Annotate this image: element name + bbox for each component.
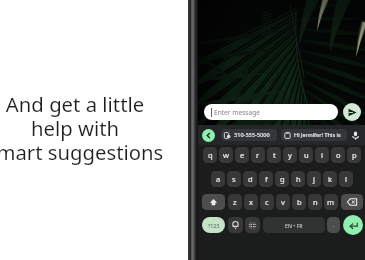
button[interactable]: . xyxy=(327,217,340,233)
staticText: a xyxy=(216,174,221,184)
staticText: q xyxy=(208,150,213,160)
button[interactable]: Backspace xyxy=(341,194,363,210)
staticText: u xyxy=(304,150,309,160)
staticText: v xyxy=(281,197,285,207)
button[interactable]: r xyxy=(251,147,265,163)
button[interactable]: y xyxy=(283,147,297,163)
button[interactable]: p xyxy=(347,147,361,163)
button[interactable]: i xyxy=(315,147,329,163)
staticText: z xyxy=(233,197,237,207)
button[interactable]: Change language xyxy=(245,217,260,233)
button[interactable]: b xyxy=(292,194,306,210)
staticText: w xyxy=(223,150,229,160)
staticText: m xyxy=(327,197,335,207)
staticText: x xyxy=(249,197,254,207)
staticText: h xyxy=(296,174,301,184)
staticText: EN • FR xyxy=(285,222,303,229)
staticText: Hi Jennifer! This is D xyxy=(294,131,344,139)
button[interactable]: ?123 xyxy=(202,217,225,233)
staticText: k xyxy=(328,174,333,184)
button[interactable]: Send xyxy=(343,103,361,121)
button[interactable]: Enter xyxy=(343,215,363,235)
button[interactable]: z xyxy=(228,194,242,210)
button[interactable]: v xyxy=(276,194,290,210)
staticText: g xyxy=(280,174,285,184)
button[interactable]: u xyxy=(299,147,313,163)
button[interactable]: n xyxy=(308,194,322,210)
button[interactable]: s xyxy=(227,171,241,187)
staticText: b xyxy=(297,197,302,207)
button[interactable]: Emoji xyxy=(228,217,243,233)
button[interactable]: d xyxy=(243,171,257,187)
button[interactable]: q xyxy=(203,147,217,163)
button[interactable]: h xyxy=(291,171,305,187)
staticText: p xyxy=(352,150,357,160)
staticText: d xyxy=(248,174,253,184)
button[interactable]: c xyxy=(260,194,274,210)
staticText: n xyxy=(313,197,318,207)
button[interactable]: g xyxy=(275,171,289,187)
staticText: ?123 xyxy=(208,222,220,229)
staticText: And get a little help with smart suggest… xyxy=(0,90,166,166)
button[interactable]: Hi Jennifer! This is D xyxy=(281,129,347,141)
staticText: Enter message xyxy=(214,108,260,117)
staticText: l xyxy=(345,174,347,184)
button[interactable]: a xyxy=(211,171,225,187)
staticText: . xyxy=(333,221,335,229)
button[interactable]: l xyxy=(339,171,353,187)
button[interactable]: Back xyxy=(202,129,215,142)
staticText: 310-555-5000 xyxy=(234,131,270,139)
staticText: e xyxy=(240,150,245,160)
button[interactable]: o xyxy=(331,147,345,163)
staticText: r xyxy=(256,150,260,160)
button[interactable]: Voice input xyxy=(349,129,362,142)
button[interactable]: x xyxy=(244,194,258,210)
button[interactable]: k xyxy=(323,171,337,187)
staticText: s xyxy=(232,174,236,184)
staticText: o xyxy=(336,150,341,160)
button[interactable]: EN • FR xyxy=(263,217,325,233)
button[interactable]: m xyxy=(324,194,338,210)
staticText: j xyxy=(313,174,315,184)
staticText: t xyxy=(273,150,276,160)
button[interactable]: j xyxy=(307,171,321,187)
staticText: c xyxy=(265,197,269,207)
button[interactable]: e xyxy=(235,147,249,163)
button[interactable]: t xyxy=(267,147,281,163)
staticText: i xyxy=(321,150,323,160)
button[interactable]: Enter message xyxy=(204,104,338,120)
button[interactable]: 310-555-5000 xyxy=(221,129,277,141)
button[interactable]: Shift xyxy=(202,194,225,210)
button[interactable]: f xyxy=(259,171,273,187)
button[interactable]: w xyxy=(219,147,233,163)
staticText: f xyxy=(265,174,268,184)
staticText: y xyxy=(288,150,292,160)
